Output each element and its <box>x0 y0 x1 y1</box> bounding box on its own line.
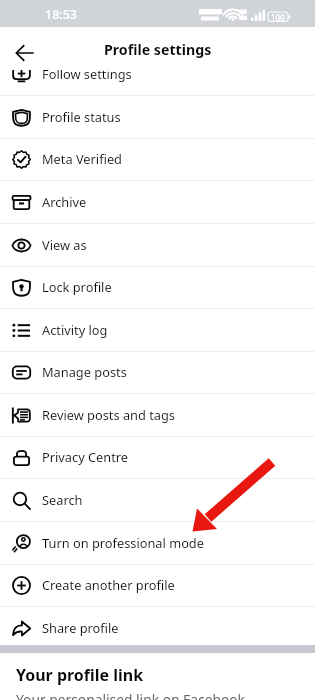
button[interactable]: Follow settings <box>0 70 315 96</box>
staticText: 18:53 <box>45 6 78 23</box>
button[interactable]: Lock profile <box>0 266 315 309</box>
staticText: Archive <box>42 193 87 210</box>
button[interactable]: Activity log <box>0 309 315 352</box>
staticText: Search <box>42 491 83 508</box>
button[interactable]: Meta Verified <box>0 138 315 181</box>
button[interactable]: Share profile <box>0 607 315 650</box>
staticText: Lock profile <box>42 278 112 295</box>
staticText: Profile settings <box>104 40 212 59</box>
staticText: Meta Verified <box>42 150 122 167</box>
button[interactable]: Create another profile <box>0 564 315 607</box>
staticText: Your personalised link on Facebook <box>16 690 245 700</box>
button[interactable]: Manage posts <box>0 351 315 394</box>
staticText: Manage posts <box>42 363 127 380</box>
staticText: Review posts and tags <box>42 406 175 423</box>
button[interactable]: Profile status <box>0 96 315 139</box>
staticText: Create another profile <box>42 576 175 593</box>
staticText: Your profile link <box>16 664 144 686</box>
staticText: 100 <box>271 12 285 23</box>
button[interactable]: Privacy Centre <box>0 436 315 479</box>
staticText: Activity log <box>42 321 108 338</box>
button[interactable]: Archive <box>0 181 315 224</box>
button[interactable]: View as <box>0 224 315 267</box>
staticText: Turn on professional mode <box>42 534 204 551</box>
button[interactable]: Back <box>8 36 41 69</box>
staticText: Follow settings <box>42 70 132 82</box>
button[interactable]: Review posts and tags <box>0 394 315 437</box>
button[interactable]: Search <box>0 479 315 522</box>
staticText: Privacy Centre <box>42 448 129 465</box>
staticText: Profile status <box>42 108 121 125</box>
button[interactable]: Turn on professional mode <box>0 522 315 565</box>
staticText: View as <box>42 236 87 253</box>
staticText: Share profile <box>42 619 119 636</box>
